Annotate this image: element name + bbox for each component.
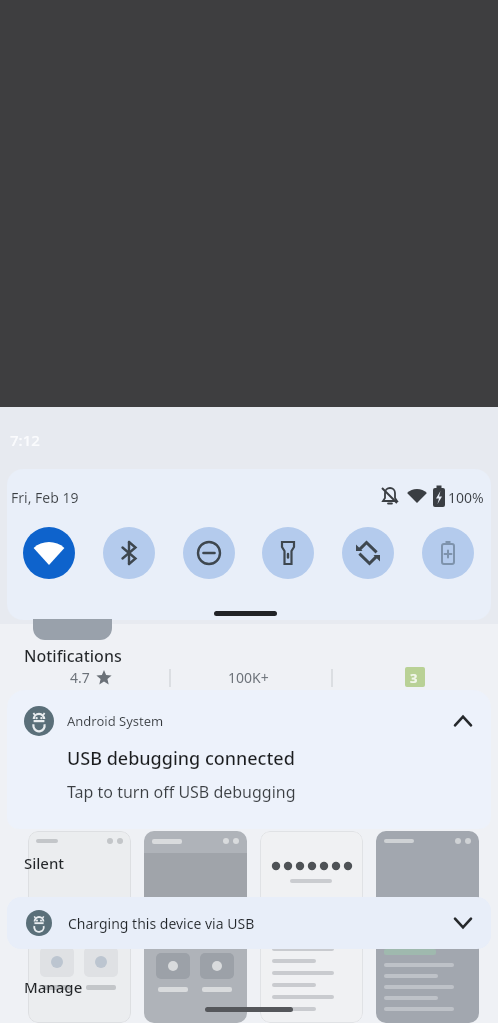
button[interactable]: [262, 527, 314, 579]
staticText: 100K+: [228, 668, 269, 687]
button[interactable]: [450, 912, 476, 934]
button[interactable]: [342, 527, 394, 579]
staticText: 7:12: [10, 430, 40, 450]
staticText: Android System: [67, 712, 164, 730]
staticText: Charging this device via USB: [68, 914, 255, 933]
button[interactable]: [103, 527, 155, 579]
button[interactable]: [7, 897, 491, 949]
staticText: 100%: [448, 488, 484, 507]
button[interactable]: [422, 527, 474, 579]
staticText: Tap to turn off USB debugging: [67, 781, 296, 803]
button[interactable]: [450, 710, 476, 732]
button[interactable]: Manage: [18, 970, 98, 1000]
staticText: Notifications: [24, 645, 122, 667]
staticText: Silent: [24, 853, 65, 873]
staticText: 4.7: [70, 668, 90, 687]
staticText: Manage: [24, 977, 83, 997]
button[interactable]: [7, 690, 491, 829]
button[interactable]: [23, 527, 75, 579]
button[interactable]: [183, 527, 235, 579]
staticText: 3: [410, 669, 418, 687]
staticText: Fri, Feb 19: [11, 488, 79, 507]
staticText: USB debugging connected: [67, 746, 295, 771]
